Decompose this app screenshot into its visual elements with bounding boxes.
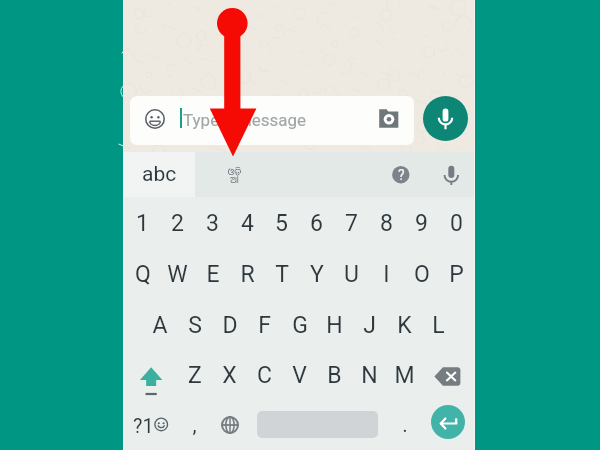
button[interactable]: 9	[404, 198, 439, 248]
staticText: Type a message	[183, 110, 307, 130]
button[interactable]: Shift	[125, 350, 177, 400]
button[interactable]: ,	[177, 400, 212, 450]
button[interactable]: L	[421, 300, 456, 350]
staticText: X	[222, 362, 237, 389]
button[interactable]: .	[387, 400, 422, 450]
button[interactable]: 0	[439, 198, 474, 248]
button[interactable]: 8	[369, 198, 404, 248]
button[interactable]: K	[387, 300, 422, 350]
staticText: C	[257, 362, 272, 389]
staticText: V	[292, 362, 307, 389]
button[interactable]: Emoji	[145, 109, 166, 130]
staticText: W	[167, 261, 188, 288]
button[interactable]: Enter	[431, 405, 465, 439]
staticText: P	[449, 261, 464, 288]
staticText: 4	[241, 210, 254, 237]
button[interactable]: E	[195, 249, 230, 299]
staticText: D	[222, 312, 238, 339]
staticText: ,	[192, 413, 197, 438]
staticText: 6	[310, 210, 323, 237]
staticText: U	[344, 261, 359, 288]
button[interactable]: Change language	[213, 408, 247, 442]
button[interactable]: 1	[125, 198, 160, 248]
staticText: 5	[275, 210, 288, 237]
staticText: abc	[142, 162, 177, 187]
staticText: R	[240, 261, 255, 288]
button[interactable]: T	[264, 249, 299, 299]
staticText: ?1	[133, 414, 154, 437]
button[interactable]: C	[247, 350, 282, 400]
button[interactable]: 3	[195, 198, 230, 248]
button[interactable]: J	[352, 300, 387, 350]
button[interactable]: abc	[124, 152, 195, 197]
staticText: N	[361, 362, 378, 389]
button[interactable]: S	[177, 300, 212, 350]
button[interactable]: V	[282, 350, 317, 400]
staticText: ?	[398, 167, 405, 183]
button[interactable]: Odia keyboard layout	[195, 152, 266, 197]
staticText: I	[383, 261, 390, 288]
button[interactable]: W	[160, 249, 195, 299]
button[interactable]: Voice input	[437, 158, 465, 190]
button[interactable]: 2	[160, 198, 195, 248]
staticText: 2	[171, 210, 184, 237]
staticText: S	[188, 312, 202, 339]
button[interactable]: F	[247, 300, 282, 350]
staticText: G	[292, 312, 308, 339]
staticText: E	[206, 261, 220, 288]
button[interactable]: R	[230, 249, 265, 299]
button[interactable]: M	[387, 350, 422, 400]
staticText: B	[327, 362, 342, 389]
button[interactable]: Help	[385, 159, 417, 191]
button[interactable]: Y	[299, 249, 334, 299]
staticText: .	[402, 413, 408, 438]
button[interactable]: U	[334, 249, 369, 299]
button[interactable]: H	[317, 300, 352, 350]
staticText: T	[275, 261, 289, 288]
button[interactable]: Backspace	[421, 350, 473, 400]
button[interactable]: D	[212, 300, 247, 350]
staticText: O	[414, 261, 430, 288]
staticText: F	[258, 312, 271, 339]
staticText: A	[152, 312, 168, 339]
staticText: 7	[345, 210, 358, 237]
button[interactable]: O	[404, 249, 439, 299]
button[interactable]: B	[317, 350, 352, 400]
button[interactable]: Symbols and emoji	[125, 400, 177, 450]
staticText: 3	[206, 210, 219, 237]
staticText: Y	[310, 261, 324, 288]
button[interactable]: G	[282, 300, 317, 350]
button[interactable]: N	[352, 350, 387, 400]
button[interactable]: Record voice message	[423, 96, 468, 141]
staticText: 0	[450, 210, 463, 237]
button[interactable]: Camera	[375, 105, 403, 133]
staticText: Z	[188, 362, 202, 389]
staticText: 8	[380, 210, 393, 237]
staticText: L	[432, 312, 445, 339]
button[interactable]: A	[142, 300, 177, 350]
button[interactable]: Type a message	[130, 96, 414, 145]
staticText: 1	[136, 210, 149, 237]
button[interactable]: Z	[177, 350, 212, 400]
staticText: H	[326, 312, 343, 339]
staticText: ଓଡ଼ିଆ	[225, 166, 244, 186]
staticText: 9	[415, 210, 428, 237]
button[interactable]: 5	[264, 198, 299, 248]
staticText: K	[397, 312, 412, 339]
button[interactable]: X	[212, 350, 247, 400]
button[interactable]: Q	[125, 249, 160, 299]
button[interactable]: P	[439, 249, 474, 299]
staticText: J	[363, 312, 376, 339]
button[interactable]: 6	[299, 198, 334, 248]
staticText: Q	[135, 261, 151, 288]
button[interactable]: I	[369, 249, 404, 299]
staticText: M	[394, 362, 415, 389]
button[interactable]: 4	[230, 198, 265, 248]
button[interactable]: 7	[334, 198, 369, 248]
